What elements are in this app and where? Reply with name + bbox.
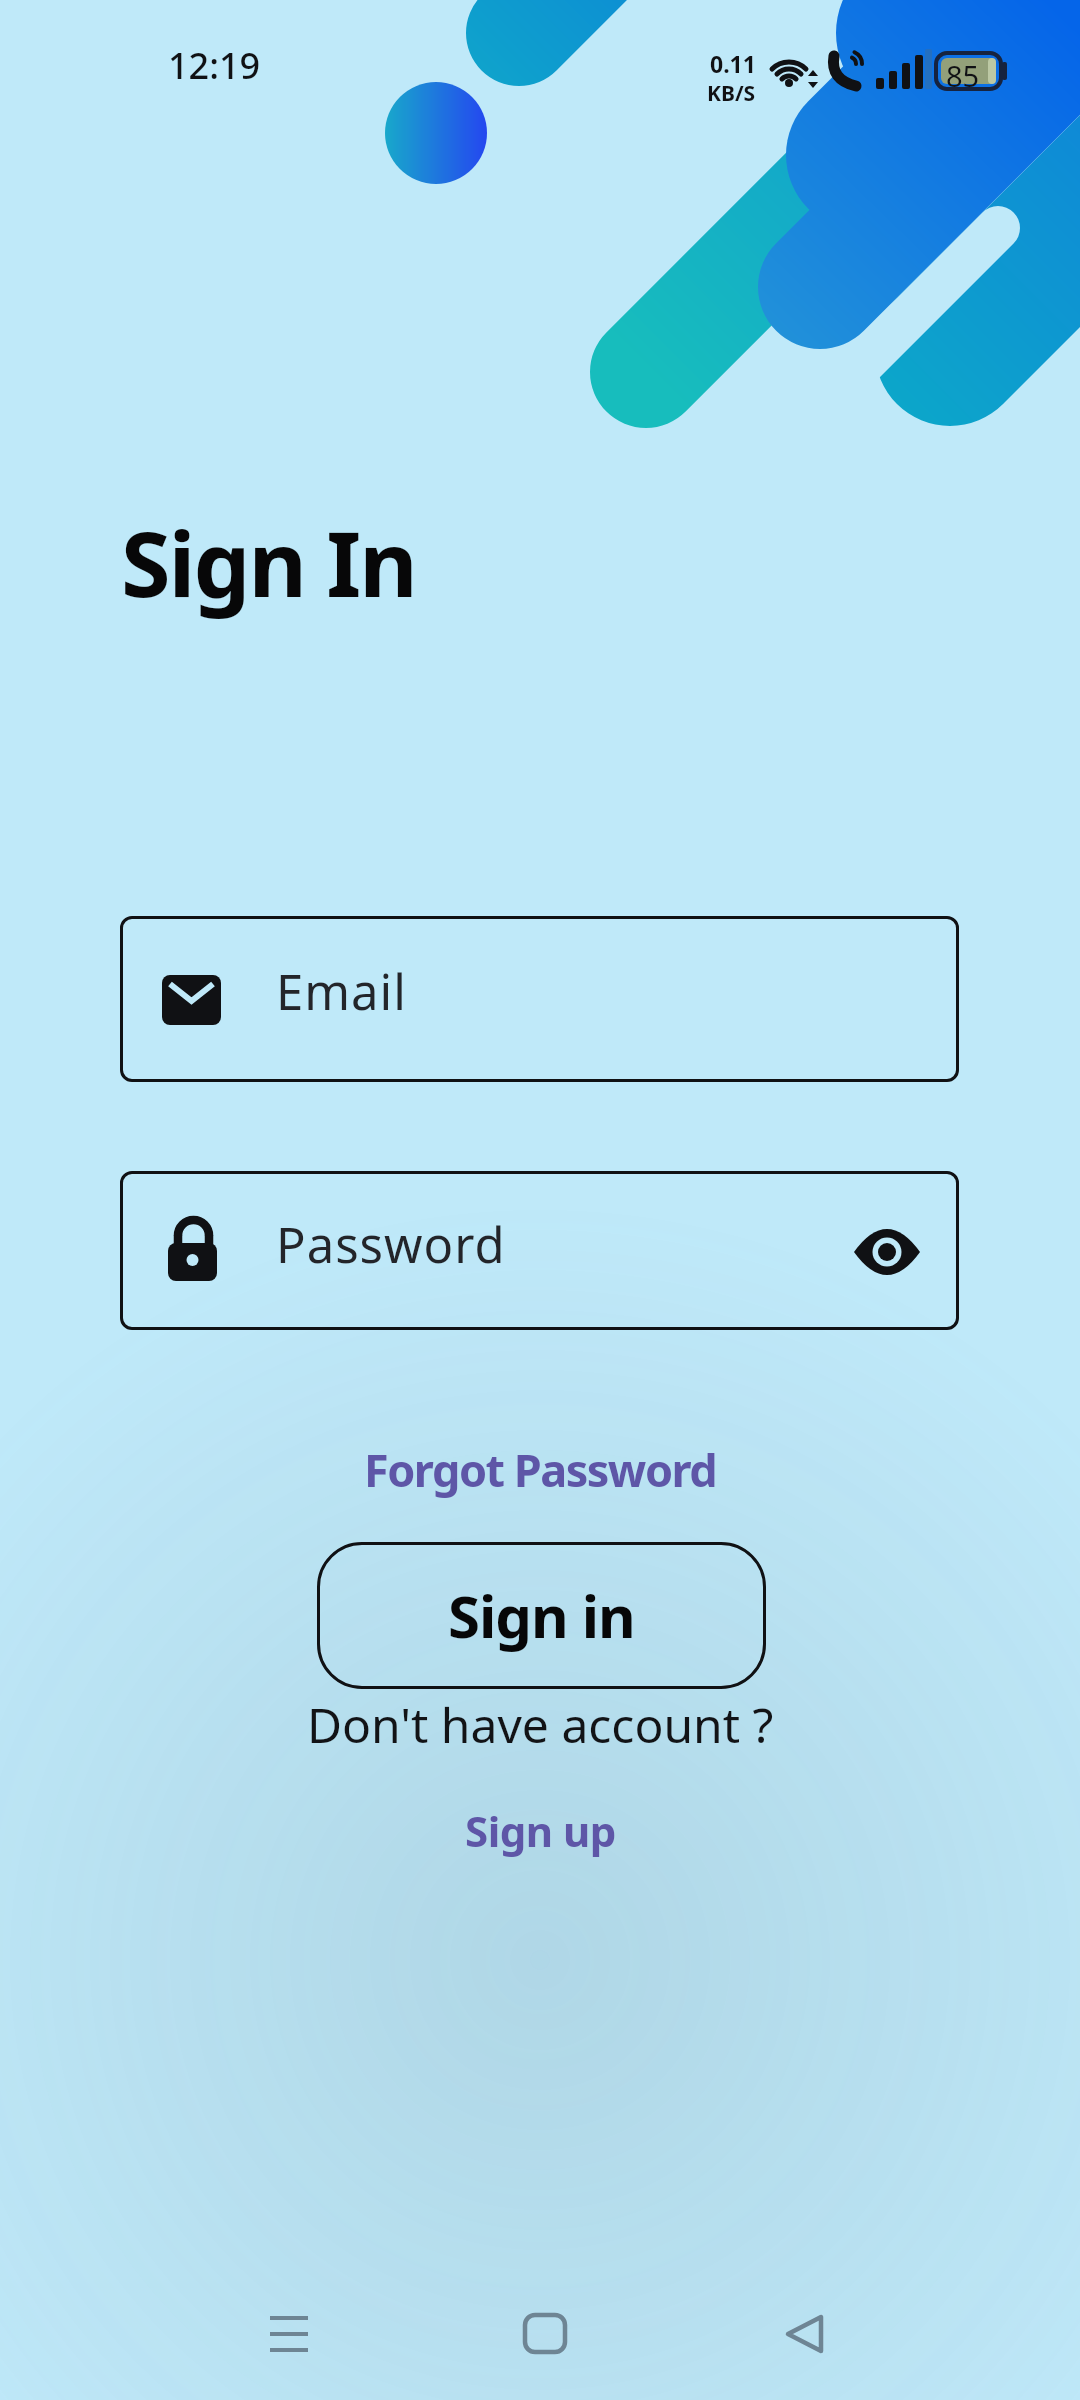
staticText: 12:19 <box>168 41 261 90</box>
staticText: Don't have account ? <box>307 1692 774 1757</box>
staticText: Email <box>276 958 407 1025</box>
staticText: Sign up <box>465 1802 616 1859</box>
staticText: KB/S <box>707 79 756 108</box>
staticText: Password <box>276 1211 506 1278</box>
button[interactable]: Forgot Password <box>364 1439 717 1500</box>
button[interactable]: Sign in <box>317 1542 766 1689</box>
button[interactable] <box>258 2305 320 2367</box>
staticText: 85 <box>946 56 980 95</box>
button[interactable]: Sign up <box>465 1802 616 1859</box>
staticText: Sign In <box>121 501 416 624</box>
button[interactable]: Email <box>120 916 959 1082</box>
button[interactable] <box>776 2305 838 2367</box>
staticText: Forgot Password <box>364 1439 717 1500</box>
button[interactable] <box>514 2305 576 2367</box>
staticText: 0.11 <box>710 48 756 79</box>
staticText: Sign in <box>448 1576 635 1655</box>
button[interactable]: Password <box>120 1171 959 1330</box>
